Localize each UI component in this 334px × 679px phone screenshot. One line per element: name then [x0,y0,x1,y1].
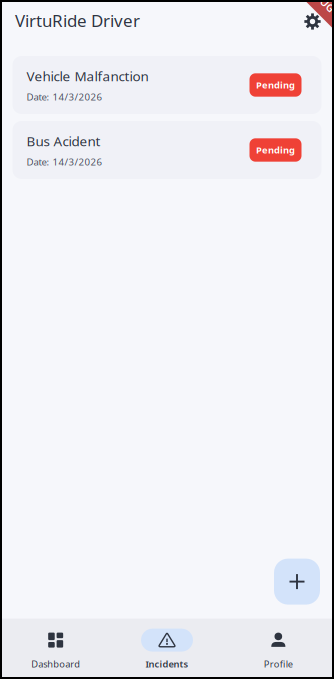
button[interactable]: Profile [223,629,334,670]
staticText: Profile [264,658,293,670]
button[interactable]: Incidents [111,629,223,670]
button[interactable]: Bus Acident [12,121,321,179]
staticText: Pending [256,144,295,156]
staticText: Vehicle Malfanction [26,67,148,85]
button[interactable]: Dashboard [0,629,111,670]
staticText: Date: 14/3/2026 [26,90,102,103]
staticText: Dashboard [31,658,80,670]
staticText: Pending [256,79,295,91]
staticText: Date: 14/3/2026 [26,155,102,168]
staticText: Bus Acident [26,132,100,150]
button[interactable]: Add incident [274,559,320,605]
button[interactable]: Vehicle Malfanction [12,56,321,114]
button[interactable]: Settings [294,2,330,38]
staticText: VirtuRide Driver [15,9,140,32]
staticText: Incidents [145,658,188,670]
